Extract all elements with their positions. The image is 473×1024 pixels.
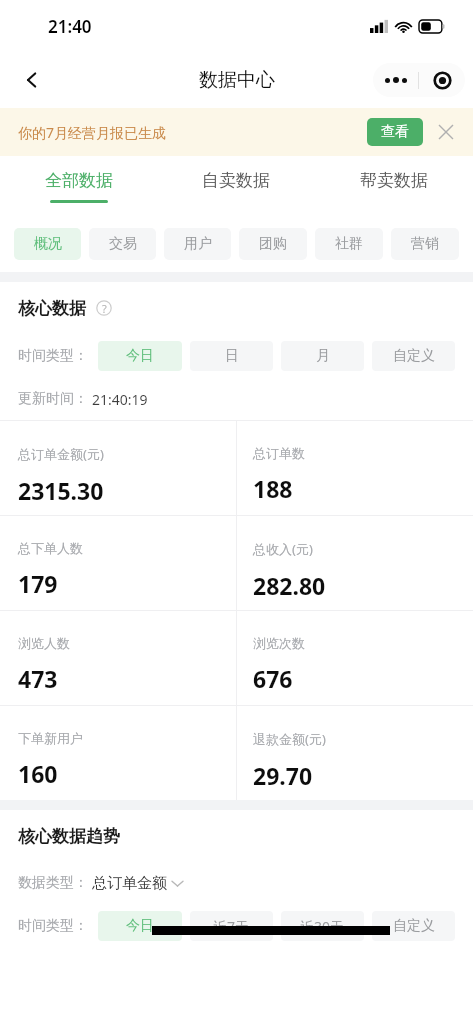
button[interactable]: 浏览人数 xyxy=(0,611,236,705)
button[interactable]: Close mini program xyxy=(419,71,465,90)
button[interactable]: 概况 xyxy=(14,228,81,260)
button[interactable]: 社群 xyxy=(315,228,383,260)
button[interactable]: 全部数据 xyxy=(0,156,157,216)
staticText: 473 xyxy=(18,663,58,694)
staticText: 2315.30 xyxy=(18,475,104,506)
staticText: 今日 xyxy=(126,347,154,365)
staticText: 29.70 xyxy=(253,760,313,791)
staticText: 282.80 xyxy=(253,570,326,601)
staticText: 日 xyxy=(225,347,239,365)
staticText: 核心数据趋势 xyxy=(18,826,120,847)
staticText: 总下单人数 xyxy=(18,540,83,556)
staticText: 数据中心 xyxy=(199,68,275,92)
staticText: 退款金额(元) xyxy=(253,730,326,748)
staticText: 交易 xyxy=(109,235,137,253)
button[interactable]: 自定义 xyxy=(372,911,455,941)
button[interactable]: 月 xyxy=(281,341,364,371)
button[interactable]: 总订单数 xyxy=(237,421,473,515)
staticText: 今日 xyxy=(126,917,154,935)
button[interactable]: 今日 xyxy=(98,911,182,941)
staticText: 自定义 xyxy=(393,347,435,365)
staticText: 概况 xyxy=(34,235,62,253)
staticText: 下单新用户 xyxy=(18,730,83,746)
staticText: 帮卖数据 xyxy=(360,170,428,191)
staticText: 全部数据 xyxy=(45,170,113,191)
staticText: 自卖数据 xyxy=(202,170,270,191)
staticText: 179 xyxy=(18,568,58,599)
staticText: 总订单金额 xyxy=(92,874,167,893)
button[interactable]: 日 xyxy=(190,341,273,371)
button[interactable]: 浏览次数 xyxy=(237,611,473,705)
staticText: 160 xyxy=(18,758,58,789)
staticText: 21:40 xyxy=(48,15,92,38)
staticText: 数据类型： xyxy=(18,874,88,892)
staticText: 月 xyxy=(316,347,330,365)
button[interactable]: 总下单人数 xyxy=(0,516,236,610)
button[interactable]: 自卖数据 xyxy=(157,156,315,216)
button[interactable]: 下单新用户 xyxy=(0,706,236,800)
staticText: ? xyxy=(102,301,107,316)
button[interactable]: Back xyxy=(10,58,54,102)
button[interactable]: 营销 xyxy=(391,228,459,260)
button[interactable]: 团购 xyxy=(239,228,307,260)
button[interactable]: Dismiss xyxy=(433,119,459,145)
staticText: 营销 xyxy=(411,235,439,253)
button[interactable]: 近30天 xyxy=(281,911,364,941)
staticText: 自定义 xyxy=(393,917,435,935)
button[interactable]: 总订单金额 xyxy=(92,874,183,893)
button[interactable]: 自定义 xyxy=(372,341,455,371)
button[interactable]: 帮卖数据 xyxy=(315,156,473,216)
staticText: 社群 xyxy=(335,235,363,253)
staticText: 676 xyxy=(253,663,293,694)
staticText: 核心数据 xyxy=(18,298,86,319)
button[interactable]: 近7天 xyxy=(190,911,273,941)
button[interactable]: 退款金额(元) xyxy=(237,706,473,800)
staticText: 更新时间： xyxy=(18,390,88,408)
staticText: 总订单金额(元) xyxy=(18,445,104,463)
staticText: 浏览人数 xyxy=(18,635,70,651)
staticText: 21:40:19 xyxy=(92,390,148,409)
staticText: 团购 xyxy=(259,235,287,253)
staticText: 总订单数 xyxy=(253,445,305,461)
staticText: 时间类型： xyxy=(18,347,88,365)
staticText: 近30天 xyxy=(300,917,345,936)
button[interactable]: More xyxy=(373,77,418,83)
staticText: 你的7月经营月报已生成 xyxy=(18,123,167,142)
button[interactable]: Help xyxy=(93,297,115,319)
staticText: 用户 xyxy=(184,235,212,253)
button[interactable]: 交易 xyxy=(89,228,156,260)
staticText: 查看 xyxy=(381,123,409,141)
button[interactable]: 今日 xyxy=(98,341,182,371)
staticText: 总收入(元) xyxy=(253,540,313,558)
button[interactable]: 用户 xyxy=(164,228,231,260)
staticText: 时间类型： xyxy=(18,917,88,935)
staticText: 近7天 xyxy=(213,917,250,936)
button[interactable]: 总收入(元) xyxy=(237,516,473,610)
staticText: 188 xyxy=(253,473,293,504)
button[interactable]: 查看 xyxy=(367,118,423,146)
staticText: 浏览次数 xyxy=(253,635,305,651)
button[interactable]: 总订单金额(元) xyxy=(0,421,236,515)
